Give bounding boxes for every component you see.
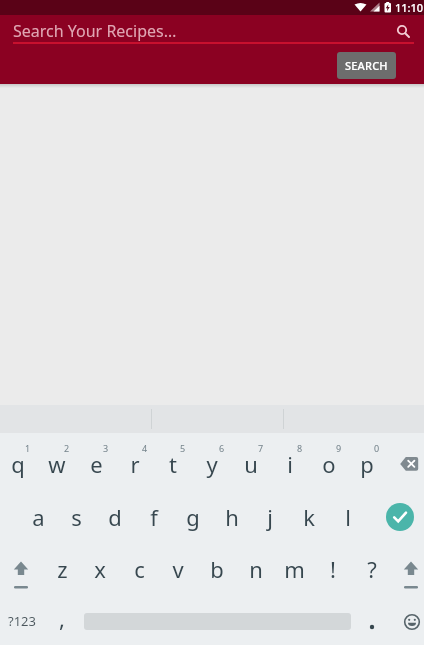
button[interactable]: o (310, 440, 348, 488)
button[interactable]: f (135, 493, 173, 541)
button[interactable]: n (237, 545, 275, 593)
button[interactable]: z (43, 545, 81, 593)
staticText: g (186, 502, 200, 532)
staticText: 5 (180, 442, 186, 454)
button[interactable]: , (43, 594, 81, 642)
button[interactable]: x (81, 545, 119, 593)
staticText: r (130, 449, 140, 479)
staticText: a (32, 502, 45, 532)
staticText: o (322, 449, 336, 479)
button[interactable]: Search Your Recipes… (13, 18, 411, 44)
staticText: q (11, 449, 25, 479)
staticText: , (59, 603, 65, 633)
staticText: Search Your Recipes… (13, 20, 177, 42)
staticText: y (206, 449, 218, 479)
button[interactable]: SEARCH (337, 52, 396, 79)
staticText: m (284, 554, 305, 584)
button[interactable]: e (77, 440, 115, 488)
staticText: 2 (64, 442, 70, 454)
staticText: 4 (142, 442, 148, 454)
staticText: i (287, 449, 293, 479)
button[interactable] (386, 503, 414, 531)
staticText: 1 (25, 442, 31, 454)
button[interactable]: ! (314, 545, 352, 593)
staticText: SEARCH (345, 58, 388, 73)
staticText: ?123 (8, 612, 36, 630)
staticText: e (90, 449, 103, 479)
staticText: v (172, 554, 184, 584)
staticText: l (345, 502, 351, 532)
staticText: u (244, 449, 258, 479)
button[interactable]: a (19, 493, 57, 541)
staticText: ! (330, 554, 336, 584)
button[interactable]: s (57, 493, 95, 541)
staticText: 6 (219, 442, 225, 454)
staticText: 7 (258, 442, 264, 454)
staticText: f (150, 502, 158, 532)
staticText: 3 (103, 442, 109, 454)
button[interactable]: u (232, 440, 270, 488)
staticText: j (267, 502, 273, 532)
staticText: s (71, 502, 82, 532)
button[interactable]: g (174, 493, 212, 541)
button[interactable]: p (348, 440, 386, 488)
button[interactable] (2, 545, 40, 593)
staticText: d (108, 502, 122, 532)
button[interactable]: v (159, 545, 197, 593)
button[interactable]: b (198, 545, 236, 593)
staticText: z (57, 554, 68, 584)
button[interactable]: m (275, 545, 313, 593)
staticText: 0 (374, 442, 380, 454)
button[interactable] (398, 603, 424, 641)
button[interactable]: k (290, 493, 328, 541)
staticText: 9 (336, 442, 342, 454)
staticText: 11:10 (395, 0, 424, 15)
button[interactable] (390, 443, 424, 485)
staticText: n (249, 554, 263, 584)
button[interactable]: y (193, 440, 231, 488)
staticText: b (210, 554, 224, 584)
button[interactable]: w (38, 440, 76, 488)
staticText: t (169, 449, 177, 479)
button[interactable]: d (96, 493, 134, 541)
button[interactable]: l (329, 493, 367, 541)
staticText: w (48, 449, 66, 479)
button[interactable]: r (116, 440, 154, 488)
button[interactable]: q (0, 440, 37, 488)
staticText: h (225, 502, 239, 532)
staticText: k (303, 502, 315, 532)
staticText: 8 (297, 442, 303, 454)
button[interactable]: t (154, 440, 192, 488)
button[interactable]: i (271, 440, 309, 488)
button[interactable]: h (213, 493, 251, 541)
staticText: c (134, 554, 145, 584)
button[interactable]: ? (353, 545, 391, 593)
button[interactable]: c (120, 545, 158, 593)
button[interactable]: j (251, 493, 289, 541)
staticText: x (94, 554, 106, 584)
button[interactable]: ?123 (0, 601, 44, 641)
button[interactable] (360, 605, 384, 639)
staticText: ? (367, 554, 377, 584)
staticText: p (360, 449, 374, 479)
button[interactable] (392, 545, 424, 593)
